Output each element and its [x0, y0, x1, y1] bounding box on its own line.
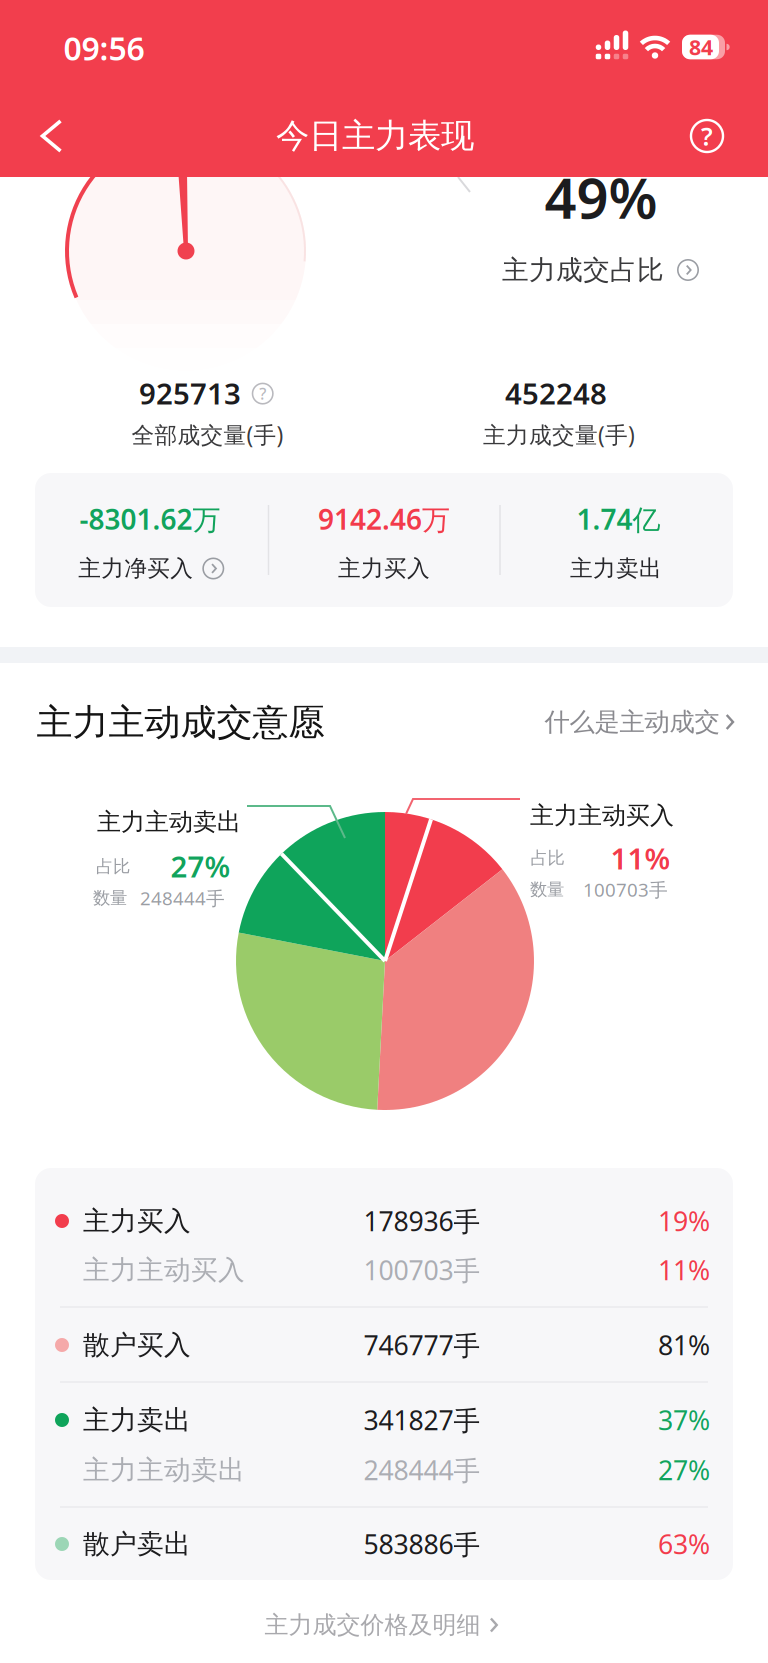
staticText: 主力主动买入: [530, 801, 674, 830]
staticText: 主力卖出: [570, 555, 662, 582]
staticText: 主力买入: [83, 1205, 191, 1237]
staticText: 占比: [530, 847, 564, 869]
staticText: -8301.62万: [79, 500, 220, 538]
staticText: 19%: [658, 1203, 710, 1239]
button[interactable]: 主力成交价格及明细: [264, 1610, 501, 1640]
button[interactable]: 主力成交占比: [502, 254, 699, 286]
staticText: 占比: [96, 856, 130, 877]
staticText: 9142.46万: [318, 500, 450, 538]
staticText: 主力成交占比: [502, 254, 664, 286]
button[interactable]: Help: [252, 383, 274, 405]
staticText: 主力卖出: [83, 1404, 191, 1436]
button[interactable]: 主力净买入: [78, 555, 224, 582]
staticText: 主力主动成交意愿: [36, 700, 324, 745]
staticText: 1.74亿: [576, 500, 660, 538]
button[interactable]: Help: [685, 114, 729, 158]
staticText: 主力净买入: [78, 555, 193, 582]
staticText: ?: [701, 119, 713, 153]
staticText: 27%: [170, 846, 230, 885]
staticText: 主力主动卖出: [97, 807, 241, 837]
staticText: 主力成交量(手): [483, 419, 635, 449]
button[interactable]: 什么是主动成交: [544, 706, 737, 737]
staticText: 数量: [93, 887, 127, 909]
staticText: 81%: [658, 1327, 710, 1363]
staticText: 341827手: [363, 1402, 480, 1438]
staticText: 主力主动买入: [83, 1254, 245, 1286]
staticText: 100703手: [363, 1252, 480, 1288]
staticText: 746777手: [363, 1327, 480, 1363]
staticText: 全部成交量(手): [131, 419, 283, 449]
staticText: 09:56: [63, 27, 144, 69]
staticText: 今日主力表现: [276, 115, 474, 156]
staticText: 27%: [658, 1452, 710, 1488]
staticText: 583886手: [363, 1526, 480, 1562]
staticText: 散户买入: [83, 1329, 191, 1361]
staticText: 主力成交价格及明细: [264, 1610, 480, 1640]
staticText: 11%: [658, 1252, 710, 1288]
staticText: 主力买入: [338, 555, 430, 582]
staticText: 178936手: [363, 1203, 480, 1239]
staticText: 63%: [658, 1526, 710, 1562]
staticText: 11%: [610, 838, 670, 877]
staticText: 248444手: [363, 1452, 480, 1488]
staticText: 数量: [530, 879, 564, 900]
staticText: 925713: [139, 373, 241, 412]
button[interactable]: Back: [29, 114, 73, 158]
staticText: 84: [689, 33, 713, 61]
staticText: 452248: [505, 373, 607, 412]
staticText: 49%: [544, 160, 657, 234]
staticText: ?: [259, 383, 266, 404]
staticText: 100703手: [583, 877, 668, 902]
staticText: 248444手: [140, 886, 225, 910]
staticText: 什么是主动成交: [544, 706, 719, 737]
staticText: 主力主动卖出: [83, 1454, 245, 1486]
staticText: 散户卖出: [83, 1528, 191, 1560]
staticText: 37%: [658, 1402, 710, 1438]
